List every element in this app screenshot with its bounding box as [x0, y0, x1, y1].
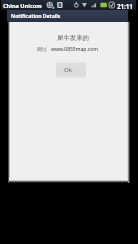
staticText: 网址: [37, 46, 47, 52]
button[interactable]: Notification Details: [7, 10, 128, 22]
staticText: 犀牛发来的: [57, 34, 89, 42]
staticText: China Unicom: [3, 2, 42, 10]
staticText: 21:11: [117, 2, 133, 10]
other: Notification icons: [46, 0, 64, 10]
staticText: Notification Details: [11, 13, 61, 20]
staticText: Ok: [64, 66, 72, 74]
button[interactable]: Ok: [56, 62, 86, 78]
staticText: www.0855map.com: [51, 46, 99, 53]
button[interactable]: www.0855map.com: [49, 44, 99, 54]
other: Status icons: [72, 0, 116, 10]
